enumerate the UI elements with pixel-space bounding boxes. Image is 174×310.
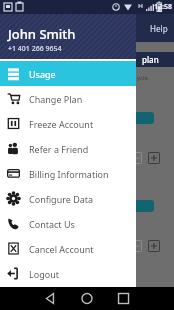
staticText: Logout: [29, 268, 59, 280]
staticText: Help: [150, 23, 168, 34]
staticText: Billing Information: [29, 168, 109, 180]
staticText: 12:58: [154, 2, 172, 12]
button[interactable]: plan: [120, 52, 174, 67]
button[interactable]: Freeze Account: [0, 111, 136, 136]
button[interactable]: Cancel Account: [0, 236, 136, 261]
button[interactable]: Billing Information: [0, 161, 136, 186]
staticText: plan: [142, 54, 159, 65]
staticText: ycle.: [137, 74, 150, 82]
staticText: Freeze Account: [29, 118, 94, 130]
staticText: Change Plan: [29, 93, 83, 105]
staticText: +1 401 266 9654: [8, 44, 62, 54]
button[interactable]: Logout: [0, 261, 136, 286]
button[interactable]: Help: [144, 19, 174, 38]
button[interactable]: [100, 112, 154, 124]
button[interactable]: Decrease: [130, 240, 142, 252]
staticText: Contact Us: [29, 218, 75, 230]
button[interactable]: Change Plan: [0, 86, 136, 111]
button[interactable]: Increase: [148, 152, 160, 164]
button[interactable]: [100, 200, 154, 212]
staticText: Configure Data: [29, 193, 94, 205]
staticText: Refer a Friend: [29, 143, 89, 155]
button[interactable]: Configure Data: [0, 186, 136, 211]
staticText: Usage: [29, 68, 56, 80]
button[interactable]: Decrease: [130, 152, 142, 164]
button[interactable]: [100, 288, 154, 300]
button[interactable]: Usage: [0, 61, 136, 86]
button[interactable]: Increase: [148, 240, 160, 252]
button[interactable]: Refer a Friend: [0, 136, 136, 161]
staticText: John Smith: [8, 25, 76, 43]
button[interactable]: Contact Us: [0, 211, 136, 236]
staticText: Cancel Account: [29, 243, 94, 255]
